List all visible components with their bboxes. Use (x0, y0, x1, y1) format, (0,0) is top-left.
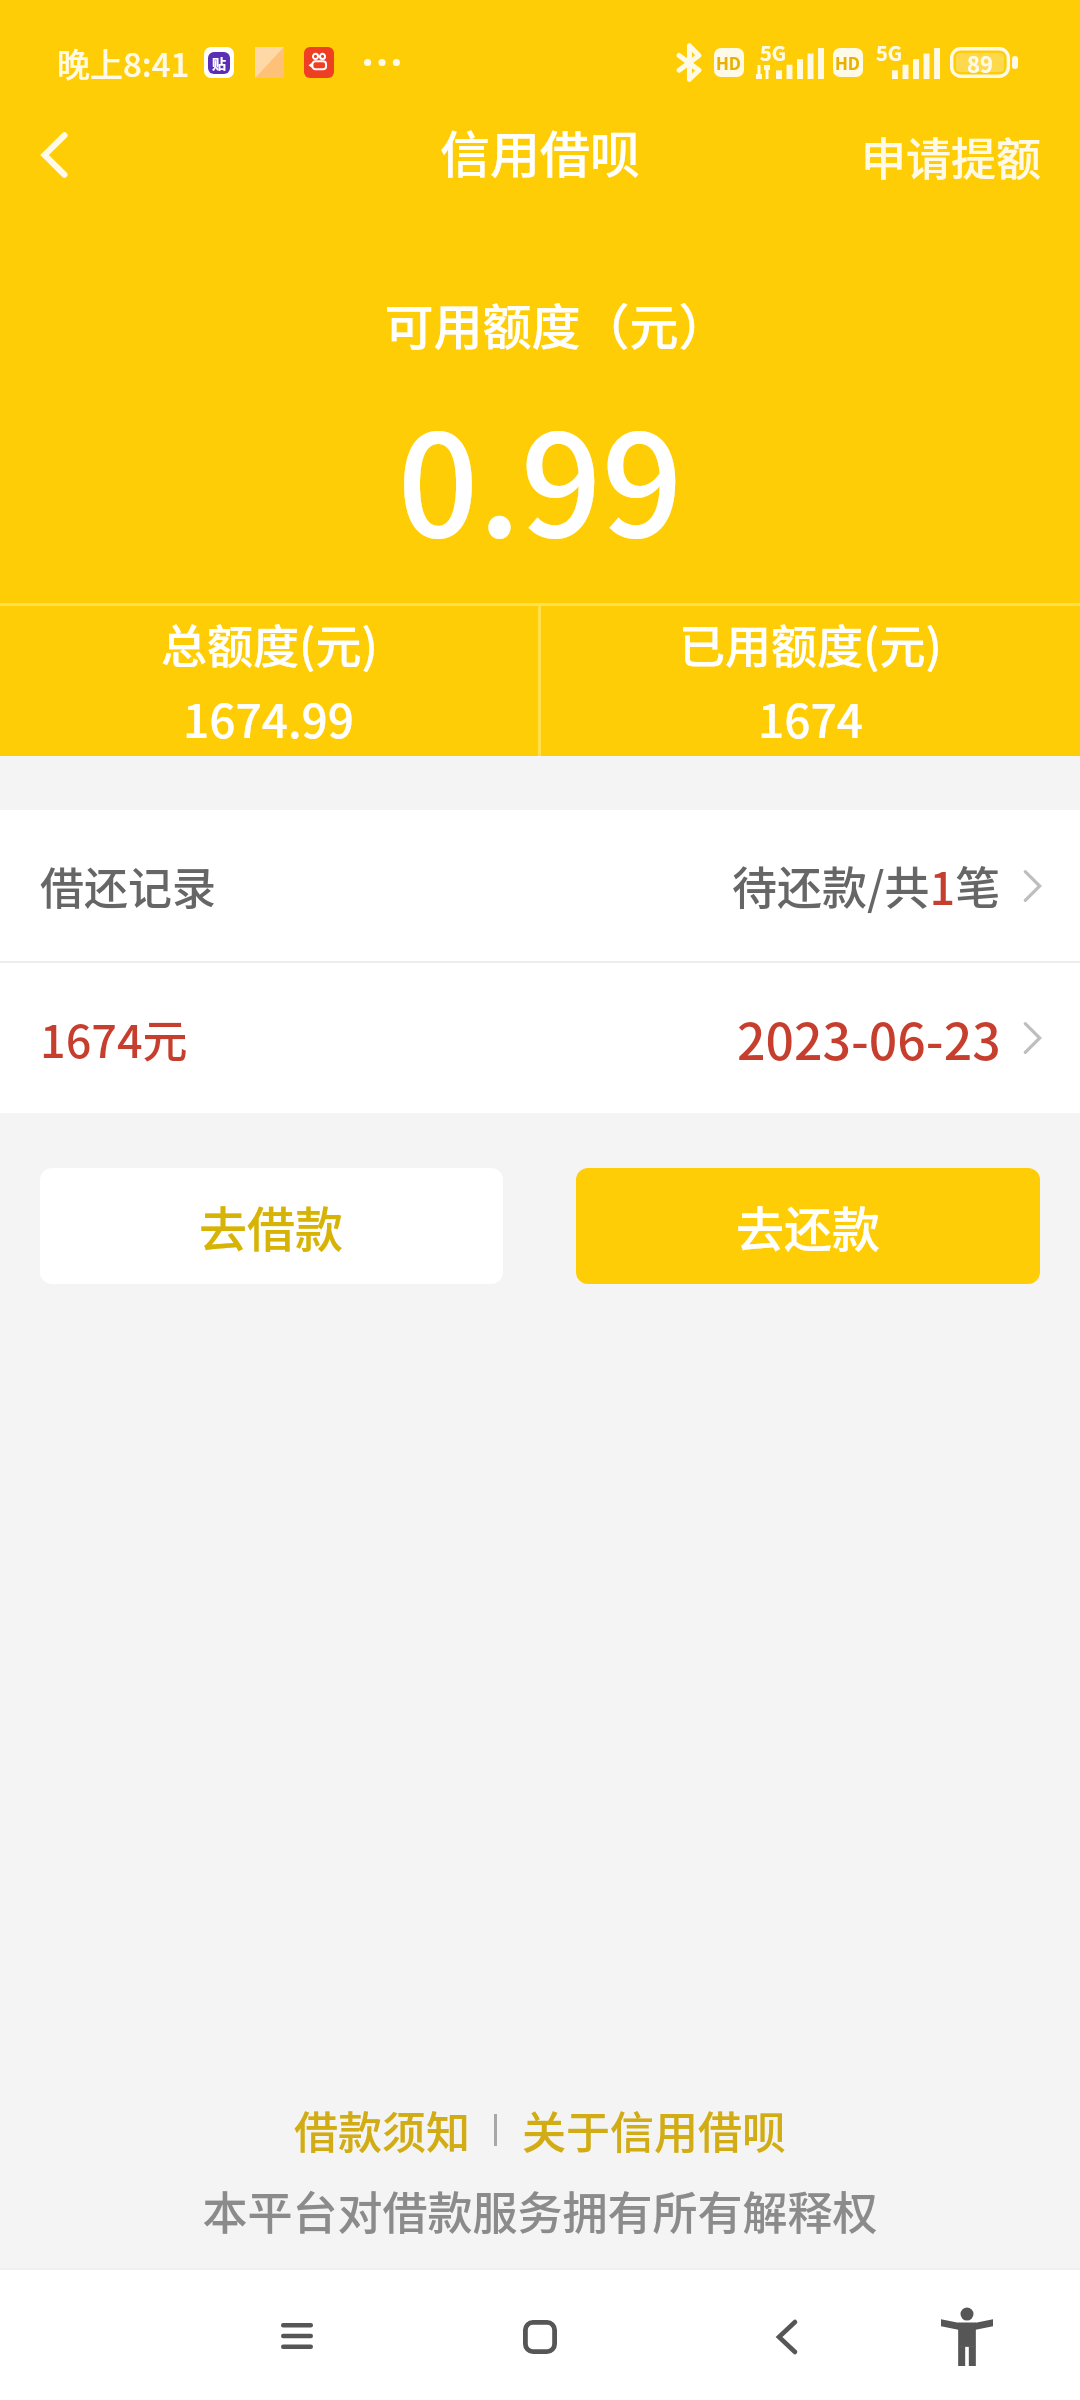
button[interactable]: 借还记录 (0, 810, 1080, 961)
staticText: 借款须知 (294, 2098, 470, 2162)
staticText: 待还款/共1笔 (732, 853, 1001, 918)
staticText: 可用额度（元） (16, 288, 1080, 359)
staticText: 去借款 (199, 1191, 344, 1261)
button[interactable]: 关于信用借呗 (522, 2098, 786, 2162)
staticText: 本平台对借款服务拥有所有解释权 (0, 2178, 1080, 2243)
staticText: HD (835, 50, 861, 75)
button[interactable]: Back (731, 2270, 843, 2382)
staticText: 总额度(元) (161, 610, 378, 677)
button[interactable]: 去还款 (576, 1168, 1040, 1284)
staticText: 1674.99 (183, 685, 355, 752)
button[interactable]: Menu (241, 2270, 353, 2382)
button[interactable]: Home (484, 2270, 596, 2382)
button[interactable]: Accessibility (911, 2270, 1023, 2382)
staticText: 0.99 (0, 372, 1080, 578)
button[interactable]: 借款须知 (294, 2098, 470, 2162)
staticText: 2023-06-23 (737, 1002, 1001, 1074)
button[interactable]: 申请提额 (819, 101, 1080, 201)
button[interactable]: Back (2, 101, 106, 201)
staticText: 1674元 (40, 1006, 188, 1071)
staticText: 贴 (212, 53, 226, 73)
staticText: 关于信用借呗 (522, 2098, 786, 2162)
staticText: 借还记录 (40, 854, 216, 918)
staticText: 晚上8:41 (57, 39, 190, 87)
staticText: 89 (967, 47, 993, 78)
staticText: 信用借呗 (440, 115, 640, 187)
staticText: 去还款 (736, 1191, 881, 1261)
staticText: 1674 (758, 685, 863, 752)
staticText: 5G (760, 38, 787, 67)
staticText: HD (716, 50, 742, 75)
button[interactable]: 去借款 (40, 1168, 503, 1284)
staticText: 5G (876, 38, 903, 67)
staticText: 已用额度(元) (679, 610, 942, 677)
button[interactable]: 1674元 (0, 963, 1080, 1113)
staticText: 申请提额 (861, 124, 1042, 188)
